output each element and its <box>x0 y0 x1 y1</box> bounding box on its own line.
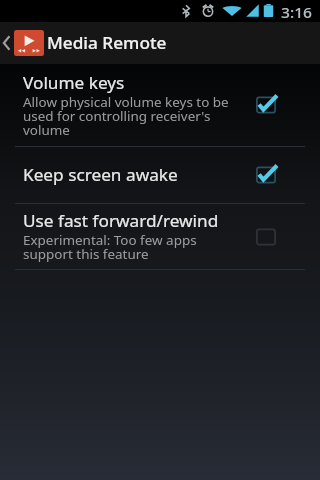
button[interactable]: Volume keys <box>0 64 320 146</box>
button[interactable]: Unchecked <box>254 227 278 247</box>
staticText: 3:16 <box>281 3 313 22</box>
button[interactable]: Navigate up: Media Remote <box>0 22 320 64</box>
staticText: Keep screen awake <box>23 164 178 186</box>
button[interactable]: Use fast forward/rewind <box>0 204 320 269</box>
staticText: Volume keys <box>23 72 124 94</box>
button[interactable]: Keep screen awake <box>0 147 320 203</box>
button[interactable]: Checked <box>254 165 278 185</box>
staticText: Experimental: Too few apps support this … <box>23 232 238 263</box>
staticText: Media Remote <box>47 32 167 54</box>
staticText: Allow physical volume keys to be used fo… <box>23 94 238 139</box>
button[interactable]: Checked <box>254 95 278 115</box>
staticText: Use fast forward/rewind <box>23 210 219 232</box>
